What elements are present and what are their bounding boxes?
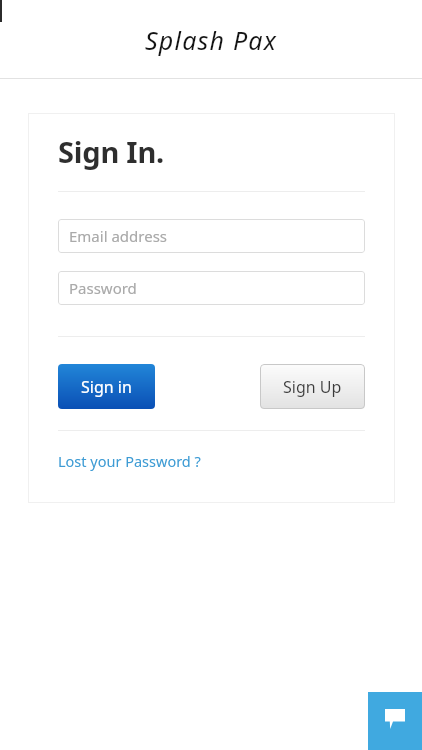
staticText: Password	[69, 278, 137, 298]
staticText: Lost your Password ?	[58, 451, 201, 471]
button[interactable]: Sign Up	[260, 364, 365, 409]
staticText: Splash Pax	[145, 23, 277, 57]
button[interactable]: Sign in	[58, 364, 155, 409]
staticText: Sign in	[81, 376, 132, 398]
button[interactable]: Password	[58, 271, 365, 305]
button[interactable]: Open chat	[368, 692, 422, 750]
button[interactable]: Email address	[58, 219, 365, 253]
staticText: Sign Up	[283, 376, 342, 398]
staticText: Sign In.	[58, 132, 165, 171]
button[interactable]: Lost your Password ?	[58, 451, 201, 471]
staticText: Email address	[69, 226, 168, 246]
